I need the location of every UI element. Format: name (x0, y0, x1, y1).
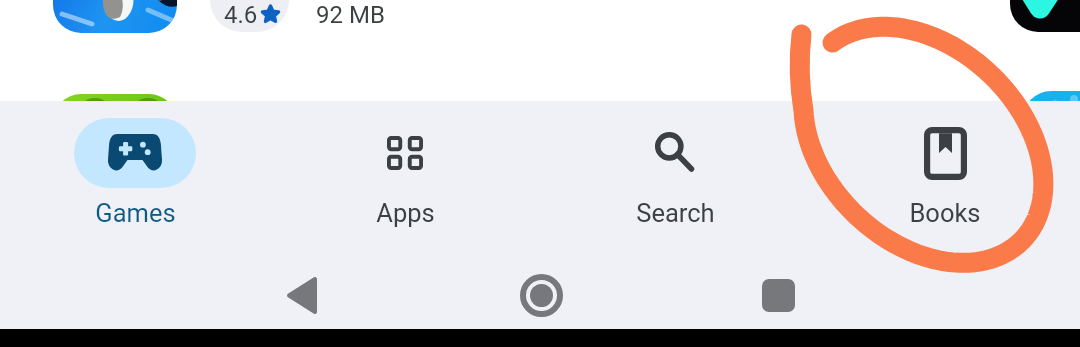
button[interactable]: Books (810, 101, 1080, 228)
staticText: Games (95, 198, 176, 228)
button[interactable]: Search (540, 101, 810, 228)
staticText: Apps (376, 198, 435, 228)
staticText: 4.6 (224, 1, 258, 29)
button[interactable]: Apps (270, 101, 540, 228)
staticText: Search (636, 198, 715, 228)
staticText: Books (909, 198, 981, 228)
button[interactable]: Back (247, 254, 357, 336)
staticText: 92 MB (316, 1, 385, 29)
button[interactable]: Recent apps (723, 254, 833, 336)
button[interactable]: Home (486, 254, 596, 336)
button[interactable]: Games (0, 101, 270, 228)
